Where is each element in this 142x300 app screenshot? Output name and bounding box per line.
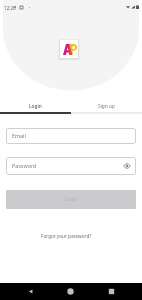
button[interactable]: Recents	[102, 283, 120, 300]
button[interactable]: Email	[6, 128, 136, 144]
button[interactable]: Show password	[122, 161, 132, 171]
staticText: Email	[12, 132, 26, 139]
button[interactable]: Forgot your password?	[41, 233, 92, 239]
button[interactable]: Login	[0, 101, 71, 114]
staticText: Password	[12, 162, 37, 169]
staticText: Login	[65, 196, 78, 203]
staticText: Sign up	[98, 103, 115, 110]
staticText: 12:26	[4, 5, 16, 11]
button[interactable]: Sign up	[71, 101, 142, 114]
staticText: Login	[29, 103, 42, 110]
button[interactable]: Back	[21, 283, 39, 300]
button[interactable]: Home	[61, 283, 79, 300]
